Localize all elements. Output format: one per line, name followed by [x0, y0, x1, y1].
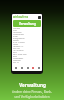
staticText: Mustermann	[13, 33, 24, 35]
button[interactable]: Tab 3	[30, 65, 35, 70]
staticText: Vorname	[13, 27, 21, 29]
button[interactable]: Telefon	[12, 39, 42, 43]
button[interactable]: Tab 2	[25, 65, 30, 70]
button[interactable]: Verfügbar	[12, 59, 42, 63]
staticText: 10115 Berlin	[13, 49, 24, 51]
staticText: Mo - Fr	[13, 61, 19, 63]
staticText: Verfügbar	[13, 59, 21, 61]
staticText: max@mail.de	[13, 37, 25, 39]
staticText: DE12 3456 7890	[13, 53, 27, 55]
button[interactable]: Nachname	[12, 31, 42, 35]
button[interactable]: Tab 1	[19, 65, 24, 70]
button[interactable]: Straße	[12, 43, 42, 47]
staticText: Verwaltung	[19, 82, 46, 88]
button[interactable]: E-Mail	[12, 35, 42, 39]
staticText: E-Mail	[13, 35, 18, 37]
button[interactable]: Bank	[12, 55, 42, 59]
button[interactable]: Tab 0	[13, 65, 18, 70]
staticText: PLZ / Ort	[13, 47, 20, 49]
staticText: IBAN	[13, 51, 17, 53]
staticText: Hauptstr. 12	[13, 45, 24, 47]
staticText: wirkaufens	[13, 15, 29, 19]
staticText: Nachname	[13, 31, 22, 33]
staticText: Straße	[13, 43, 19, 45]
button[interactable]: PLZ / Ort	[12, 47, 42, 51]
button[interactable]: IBAN	[12, 51, 42, 55]
button[interactable]: Vorname	[12, 27, 42, 31]
staticText: Verwaltung	[19, 22, 36, 26]
staticText: 0170 1234567	[13, 41, 25, 43]
button[interactable]: Tab 4	[36, 65, 41, 70]
staticText: Bank	[13, 55, 17, 57]
staticText: Telefon	[13, 39, 19, 41]
button[interactable]: Verwaltung	[13, 20, 41, 27]
staticText: Musterbank	[13, 57, 24, 59]
staticText: Max	[13, 29, 17, 31]
staticText: ändere deine Person-, Bank- und Verfügba…	[12, 90, 52, 99]
button[interactable]: Profil	[38, 16, 41, 19]
